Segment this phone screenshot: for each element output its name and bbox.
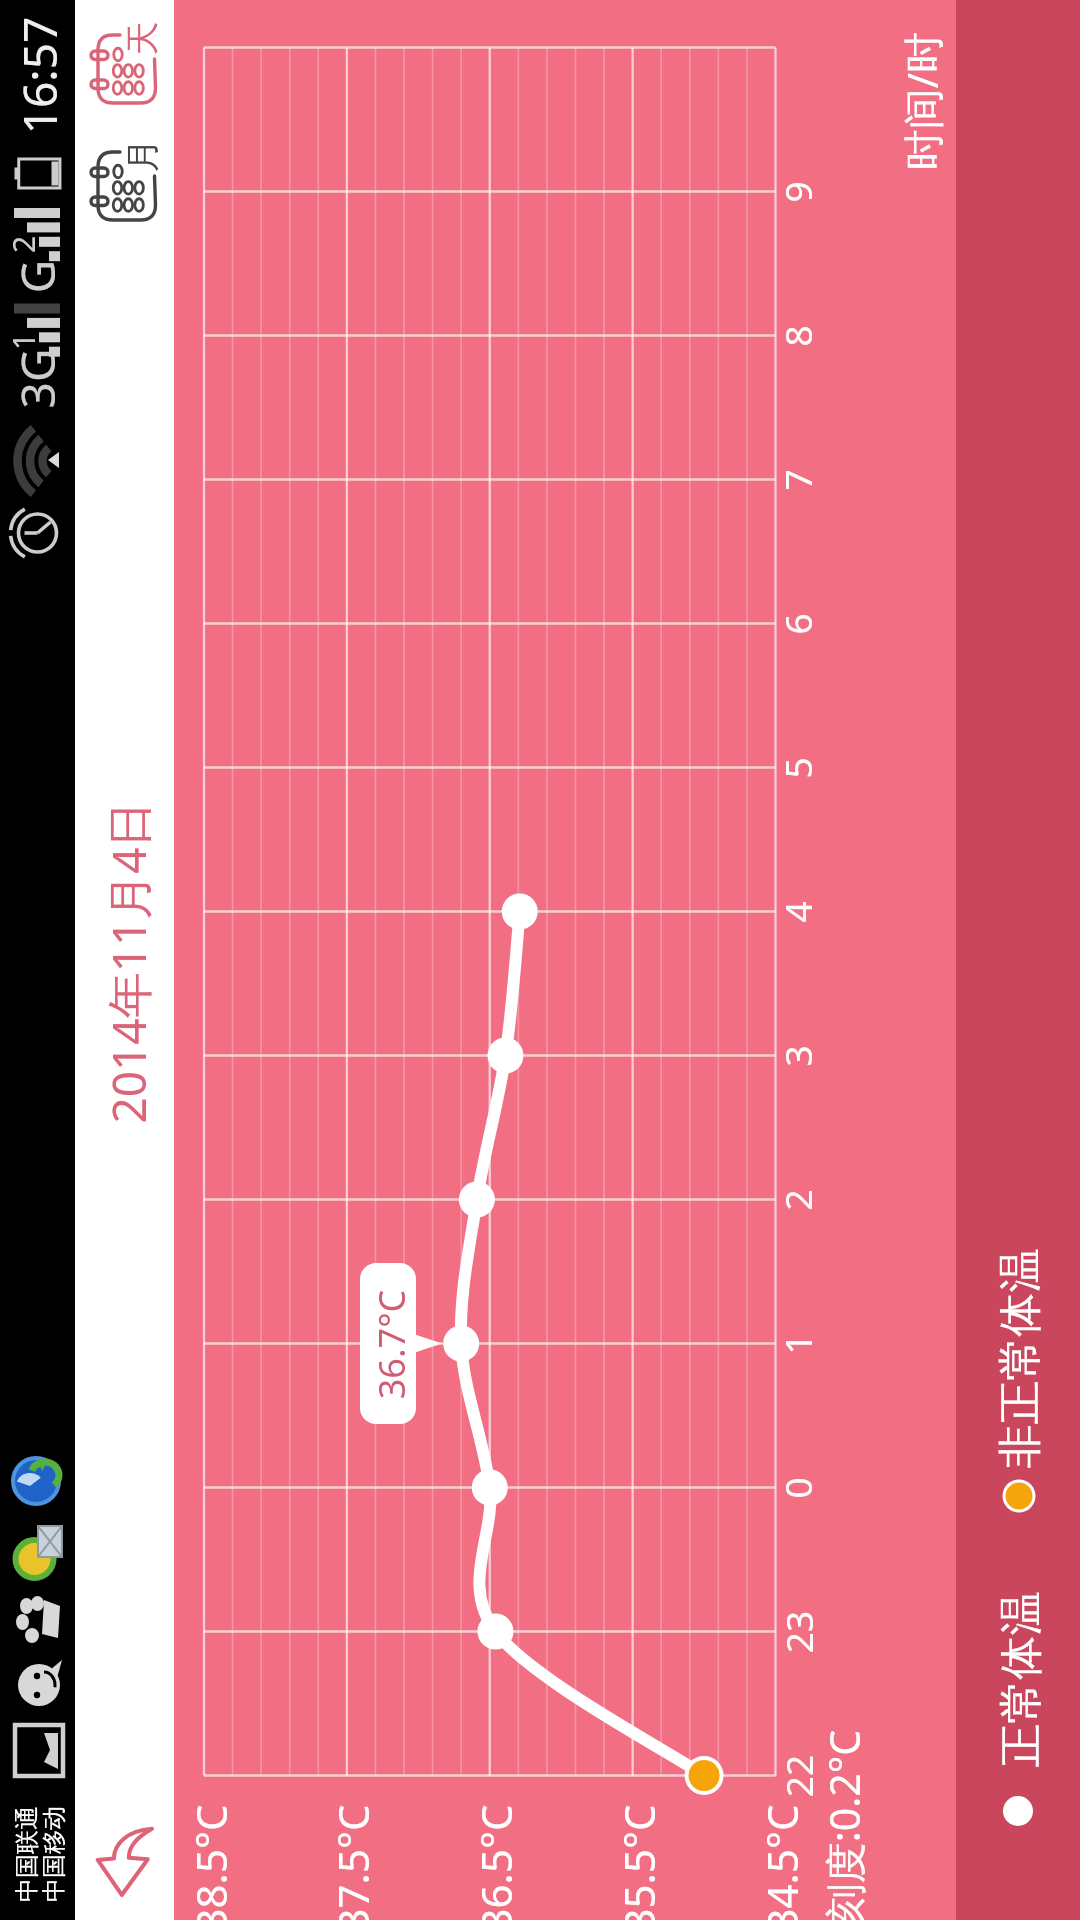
staticText: 9 [772,181,822,203]
staticText: 36.5°C [466,1804,523,1920]
staticText: 3G [5,348,68,408]
staticText: 35.5°C [609,1804,666,1920]
staticText: 1 [772,1333,822,1355]
staticText: 1 [2,332,43,350]
staticText: 2 [2,235,43,253]
staticText: 3 [772,1045,822,1067]
staticText: 23 [772,1610,822,1653]
staticText: 16:57 [7,16,70,134]
staticText: 22 [772,1754,822,1797]
staticText: 0 [772,1477,822,1499]
staticText: 正常体温 [993,1591,1048,1767]
staticText: 2014年11月4日 [97,801,160,1124]
staticText: 中国移动 [39,1806,69,1902]
staticText: 7 [772,469,822,491]
staticText: 天 [120,21,163,55]
staticText: G [5,259,68,293]
button[interactable]: 非正常体温 [957,1188,1080,1588]
staticText: 37.5°C [323,1804,380,1920]
staticText: 刻度:0.2°C [815,1729,871,1920]
button[interactable]: 1时 36.7°C [360,1263,536,1424]
staticText: 38.5°C [181,1804,238,1920]
staticText: 6 [772,613,822,635]
staticText: 非正常体温 [992,1248,1047,1468]
staticText: 月 [120,138,163,172]
button[interactable]: 导出 [96,1826,152,1896]
button[interactable]: 月视图 [86,128,162,224]
staticText: 5 [772,757,822,779]
staticText: 4 [772,901,822,923]
staticText: 34.5°C [752,1804,809,1920]
staticText: 8 [772,325,822,347]
staticText: 2 [772,1189,822,1211]
staticText: 36.7°C [366,1289,415,1399]
button[interactable]: 日视图 [86,11,162,107]
staticText: 中国联通 [12,1806,42,1902]
staticText: 时间/时 [893,31,949,170]
button[interactable]: 正常体温 [956,1509,1080,1909]
